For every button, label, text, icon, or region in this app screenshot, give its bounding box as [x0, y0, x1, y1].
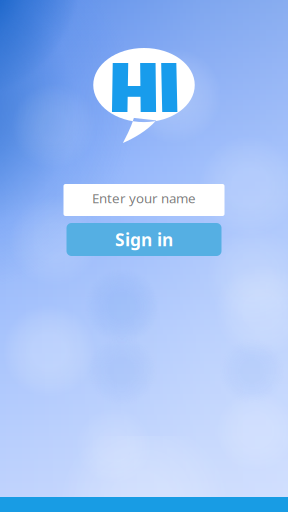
button[interactable]: Enter your name: [63, 184, 224, 216]
button[interactable]: Sign in: [66, 223, 221, 256]
staticText: Enter your name: [92, 189, 196, 207]
staticText: Sign in: [115, 228, 173, 251]
